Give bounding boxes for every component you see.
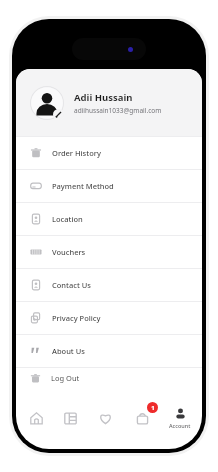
button[interactable]: Categories (55, 403, 85, 433)
staticText: Adii Hussain (74, 91, 133, 104)
button[interactable]: Contact Us (16, 269, 202, 301)
staticText: Contact Us (52, 280, 91, 290)
button[interactable]: Order History (16, 137, 202, 169)
button[interactable]: About Us (16, 335, 202, 367)
button[interactable]: Account (163, 403, 197, 433)
button[interactable]: Privacy Policy (16, 302, 202, 334)
button[interactable]: Vouchers (16, 236, 202, 268)
button[interactable]: Payment Method (16, 170, 202, 202)
staticText: Location (52, 214, 83, 224)
staticText: Vouchers (52, 247, 86, 257)
button[interactable]: Cart, 1 item (125, 403, 159, 433)
staticText: Account (169, 422, 191, 429)
staticText: Order History (52, 148, 101, 158)
staticText: Log Out (51, 373, 80, 383)
staticText: About Us (52, 346, 85, 356)
staticText: adiihussain1033@gmail.com (74, 106, 162, 115)
button[interactable]: Edit profile (53, 109, 64, 120)
button[interactable]: Wishlist (90, 403, 120, 433)
button[interactable]: Location (16, 203, 202, 235)
staticText: 1 (151, 404, 155, 412)
button[interactable]: Log Out (30, 368, 202, 388)
staticText: Payment Method (52, 181, 114, 191)
staticText: Privacy Policy (52, 313, 101, 323)
button[interactable]: Home (21, 403, 51, 433)
button[interactable]: Edit profile (16, 69, 202, 136)
